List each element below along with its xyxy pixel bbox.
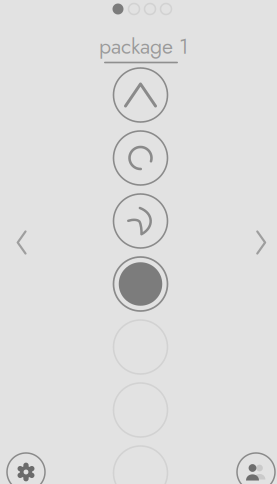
button[interactable]: Next <box>239 220 277 264</box>
button[interactable]: Previous <box>0 220 44 264</box>
staticText: package 1 <box>99 31 189 62</box>
button[interactable]: Settings <box>7 453 45 484</box>
button[interactable]: Contacts <box>237 453 275 484</box>
